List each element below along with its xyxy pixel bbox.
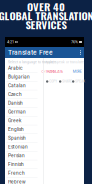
button[interactable]: Czech <box>5 90 39 99</box>
button[interactable]: Danish <box>5 99 39 108</box>
staticText: SPEAK <box>75 80 85 83</box>
staticText: Select a language to translate <box>8 60 56 64</box>
button[interactable]: Estonian <box>5 143 39 152</box>
button[interactable]: TRANSLATE <box>42 69 63 74</box>
button[interactable]: Finnish <box>5 160 39 169</box>
button[interactable]: Hebrew <box>5 178 39 184</box>
staticText: Greek <box>8 118 21 123</box>
staticText: COPY <box>49 80 57 83</box>
staticText: Spanish <box>8 135 26 141</box>
staticText: Catalan <box>8 83 26 88</box>
button[interactable]: German <box>5 108 39 117</box>
button[interactable]: More options <box>77 47 84 58</box>
staticText: OVER 40 <box>27 0 65 14</box>
staticText: Czech <box>8 92 22 97</box>
staticText: Translate Free <box>8 49 53 56</box>
staticText: Persian <box>8 153 25 158</box>
button[interactable]: SPEAK <box>72 79 84 84</box>
staticText: GLOBAL TRANSLATION <box>0 8 92 23</box>
staticText: Bulgarian <box>8 74 30 80</box>
staticText: MORE <box>73 69 82 74</box>
staticText: Estonian <box>8 144 28 150</box>
staticText: Danish <box>8 100 23 106</box>
staticText: Hebrew <box>8 179 26 184</box>
button[interactable]: Catalan <box>5 81 39 90</box>
staticText: French <box>8 170 25 176</box>
button[interactable]: COPY <box>46 79 58 84</box>
staticText: German <box>8 109 26 115</box>
button[interactable]: Greek <box>5 116 39 125</box>
staticText: SHARE <box>62 80 72 83</box>
button[interactable]: Spanish <box>5 134 39 143</box>
button[interactable]: Persian <box>5 151 39 160</box>
staticText: SERVICES <box>25 17 66 32</box>
staticText: TRANSLATE <box>45 69 63 74</box>
staticText: English <box>8 127 24 132</box>
staticText: type, speak or translate <box>46 60 84 64</box>
staticText: Finnish <box>8 162 24 167</box>
button[interactable]: Arabic <box>5 64 39 73</box>
button[interactable]: English <box>5 125 39 134</box>
staticText: 4:21 <box>7 40 14 44</box>
button[interactable]: Bulgarian <box>5 73 39 82</box>
staticText: Arabic <box>8 65 23 71</box>
button[interactable]: SHARE <box>59 79 71 84</box>
button[interactable]: MORE <box>71 69 83 73</box>
button[interactable]: French <box>5 169 39 178</box>
staticText: 76% <box>71 40 78 44</box>
